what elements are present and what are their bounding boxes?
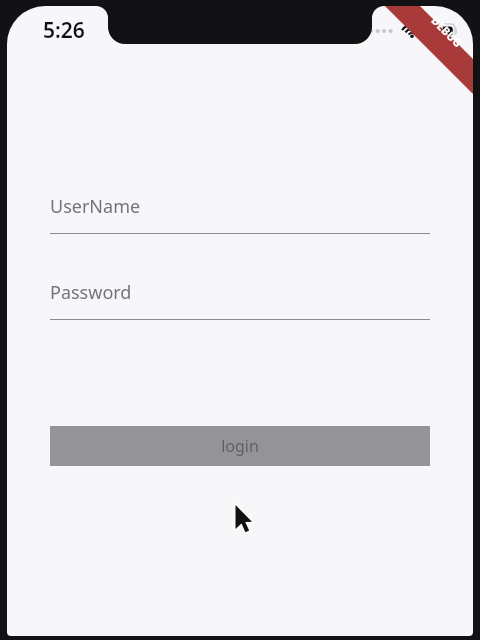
staticText: UserName <box>50 194 141 219</box>
staticText: Password <box>50 280 132 305</box>
staticText: login <box>221 435 259 457</box>
button[interactable]: Password <box>50 280 430 320</box>
staticText: DEBUG <box>428 13 466 50</box>
button[interactable]: UserName <box>50 194 430 234</box>
button[interactable]: login <box>50 426 430 466</box>
staticText: 5:26 <box>43 16 85 45</box>
